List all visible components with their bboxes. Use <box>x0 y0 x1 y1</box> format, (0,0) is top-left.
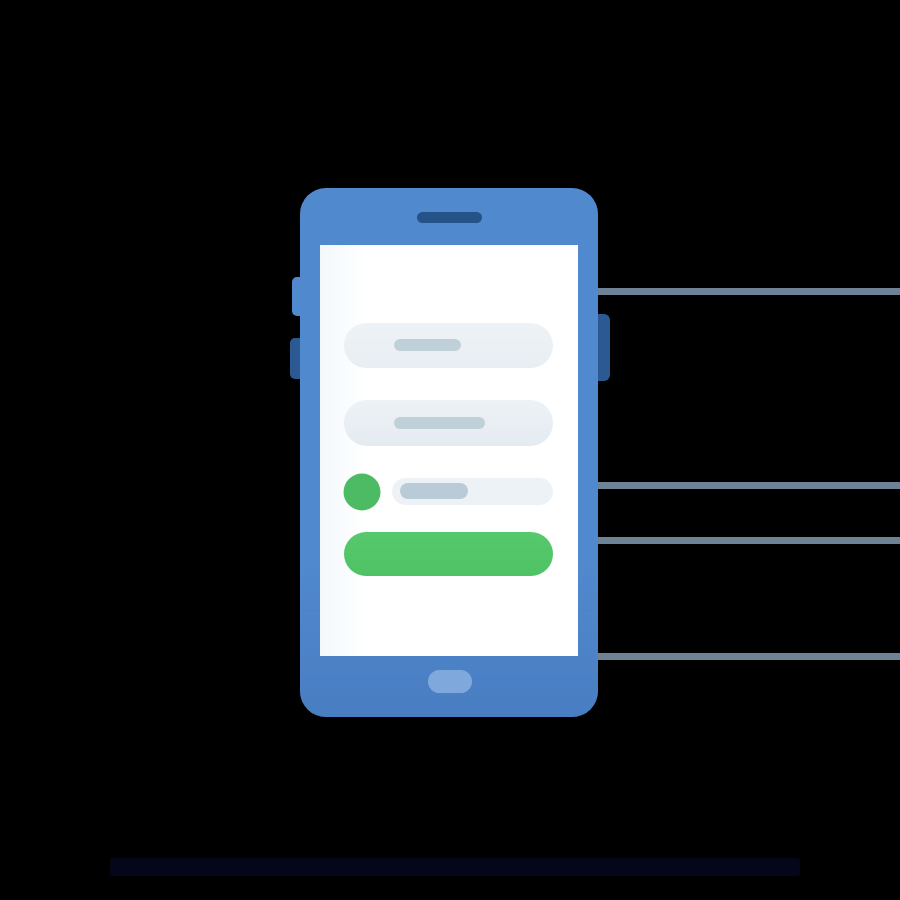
button[interactable]: Mobile phone login screen illustration <box>0 0 900 900</box>
